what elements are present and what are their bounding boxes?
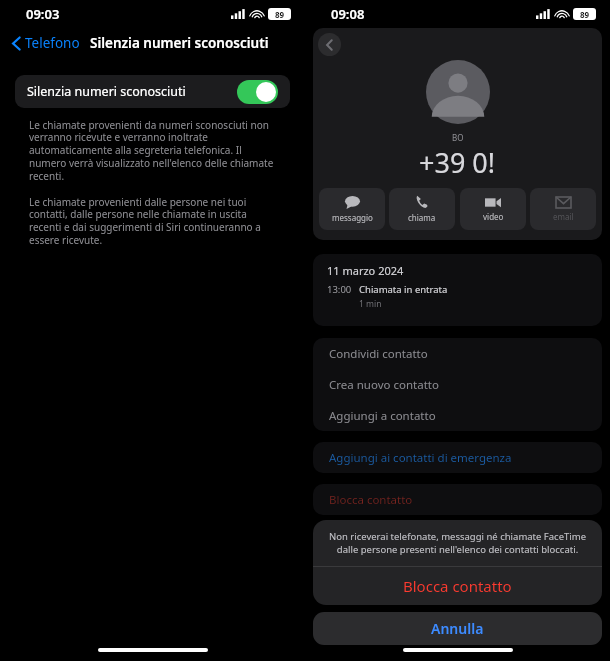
- button[interactable]: Crea nuovo contatto: [313, 369, 602, 400]
- staticText: +39 0!: [419, 144, 496, 181]
- staticText: Non riceverai telefonate, messaggi né ch…: [327, 530, 588, 556]
- staticText: email: [553, 211, 574, 222]
- button[interactable]: video: [460, 188, 526, 230]
- staticText: 09:03: [26, 5, 60, 23]
- button[interactable]: Blocca contatto: [313, 484, 602, 515]
- button[interactable]: messaggio: [319, 188, 385, 230]
- button[interactable]: email: [530, 188, 596, 230]
- staticText: BO: [452, 132, 464, 143]
- staticText: Blocca contatto: [403, 576, 512, 596]
- staticText: Annulla: [431, 619, 484, 638]
- button[interactable]: Condividi contatto: [313, 338, 602, 369]
- staticText: Telefono: [25, 34, 80, 52]
- button[interactable]: Aggiungi ai contatti di emergenza: [313, 442, 602, 473]
- staticText: chiama: [408, 212, 436, 223]
- staticText: Crea nuovo contatto: [329, 377, 439, 393]
- staticText: Chiamata in entrata: [359, 283, 448, 296]
- button[interactable]: Silenzia numeri sconosciuti: [15, 75, 290, 108]
- staticText: Le chiamate provenienti dalle persone ne…: [29, 195, 276, 247]
- button[interactable]: chiama: [389, 188, 455, 230]
- button[interactable]: Aggiungi a contatto: [313, 400, 602, 431]
- staticText: 89: [580, 9, 590, 20]
- staticText: Silenzia numeri sconosciuti: [90, 34, 269, 52]
- staticText: Aggiungi ai contatti di emergenza: [329, 450, 512, 466]
- staticText: Silenzia numeri sconosciuti: [27, 83, 237, 100]
- staticText: Aggiungi a contatto: [329, 408, 436, 424]
- staticText: 11 marzo 2024: [327, 263, 404, 278]
- staticText: 89: [275, 9, 285, 20]
- button[interactable]: Blocca contatto: [313, 567, 602, 605]
- staticText: 09:08: [331, 5, 365, 23]
- button[interactable]: Back: [318, 33, 341, 56]
- staticText: Le chiamate provenienti da numeri sconos…: [29, 118, 276, 183]
- staticText: Blocca contatto: [329, 492, 413, 508]
- staticText: 1 min: [359, 298, 382, 310]
- staticText: 13:00: [327, 283, 352, 296]
- staticText: messaggio: [332, 212, 373, 223]
- button[interactable]: 11 marzo 2024: [313, 254, 602, 326]
- staticText: video: [483, 211, 504, 222]
- staticText: Condividi contatto: [329, 346, 428, 362]
- button[interactable]: Annulla: [313, 612, 602, 645]
- button[interactable]: Telefono: [8, 31, 84, 55]
